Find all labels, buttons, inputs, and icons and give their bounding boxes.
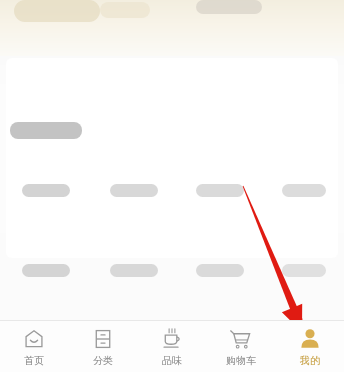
staticText: 购物车 [226, 354, 256, 367]
button[interactable]: 品味 [137, 321, 206, 372]
staticText: 分类 [93, 354, 113, 367]
button[interactable]: 分类 [68, 321, 137, 372]
button[interactable]: 我的 [275, 321, 344, 372]
button[interactable]: 首页 [0, 321, 68, 372]
button[interactable]: 购物车 [206, 321, 275, 372]
staticText: 我的 [300, 354, 320, 367]
staticText: 品味 [162, 354, 182, 367]
staticText: 首页 [24, 354, 44, 367]
